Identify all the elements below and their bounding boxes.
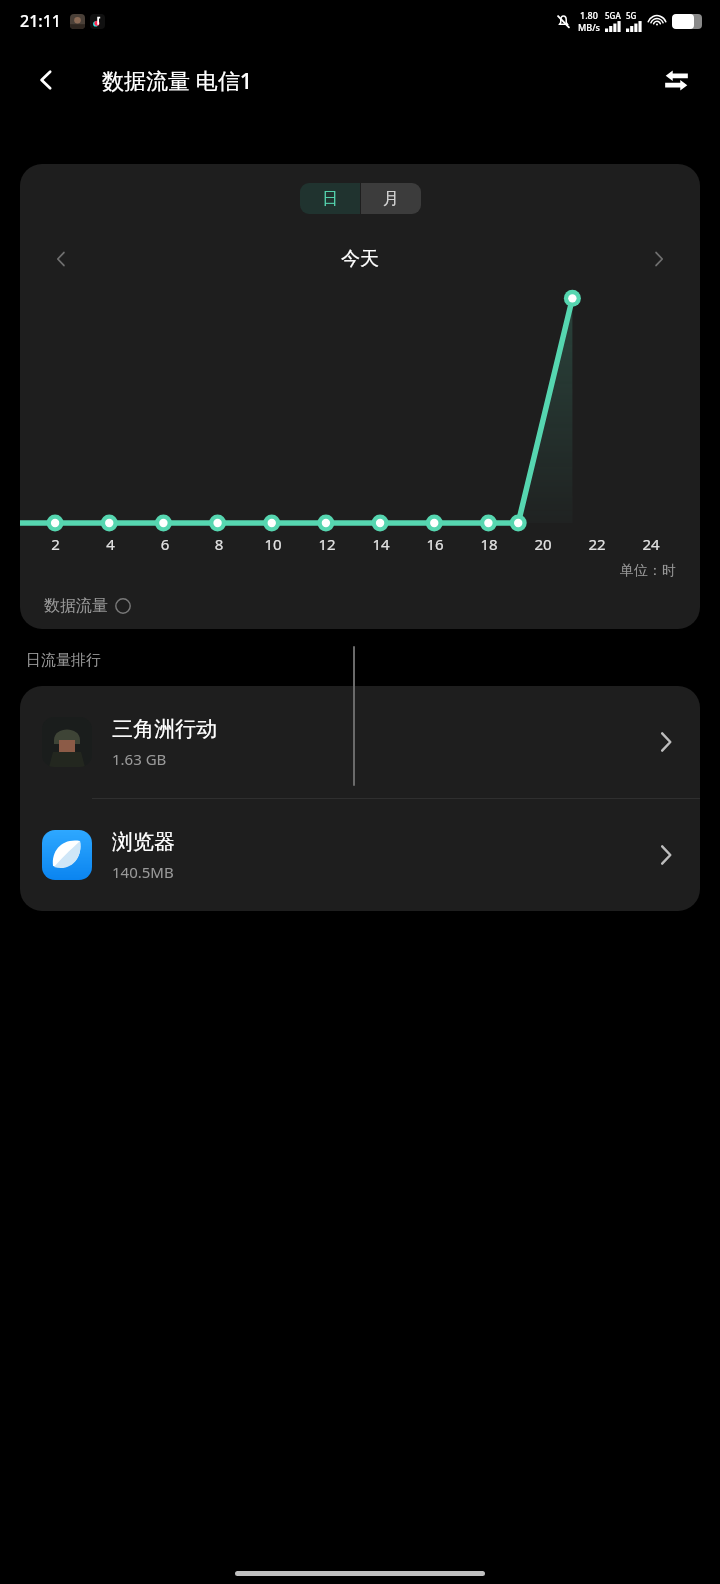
staticText: 1.80 — [580, 9, 598, 21]
staticText: 日 — [322, 189, 338, 209]
staticText: 10 — [246, 534, 300, 554]
staticText: 14 — [354, 534, 408, 554]
staticText: 4 — [83, 534, 138, 554]
button[interactable]: Next day — [642, 242, 676, 276]
staticText: 5G — [626, 10, 637, 21]
staticText: 18 — [462, 534, 516, 554]
staticText: 数据流量 — [44, 596, 108, 616]
staticText: 6 — [138, 534, 192, 554]
staticText: 日流量排行 — [26, 651, 101, 670]
button[interactable]: 月 — [361, 183, 421, 214]
staticText: 1.63 GB — [112, 749, 167, 769]
staticText: 24 — [624, 534, 678, 554]
staticText: 数据流量 电信1 — [102, 65, 253, 95]
button[interactable]: Back — [22, 56, 70, 104]
button[interactable]: 日 — [300, 183, 360, 214]
staticText: 单位：时 — [620, 562, 676, 580]
staticText: 22 — [570, 534, 624, 554]
staticText: 140.5MB — [112, 862, 174, 882]
button[interactable]: 三角洲行动 — [20, 686, 700, 798]
staticText: 5GA — [605, 10, 621, 21]
staticText: 今天 — [78, 247, 642, 271]
staticText: 三角洲行动 — [112, 716, 217, 742]
staticText: 2 — [28, 534, 83, 554]
staticText: 月 — [383, 189, 399, 209]
staticText: 16 — [408, 534, 462, 554]
staticText: 8 — [192, 534, 246, 554]
staticText: 浏览器 — [112, 829, 175, 855]
button[interactable]: 浏览器 — [20, 799, 700, 911]
staticText: 12 — [300, 534, 354, 554]
staticText: 20 — [516, 534, 570, 554]
button[interactable]: Previous day — [44, 242, 78, 276]
button[interactable]: Switch SIM — [652, 56, 700, 104]
staticText: MB/s — [578, 21, 600, 33]
staticText: 21:11 — [20, 10, 61, 32]
